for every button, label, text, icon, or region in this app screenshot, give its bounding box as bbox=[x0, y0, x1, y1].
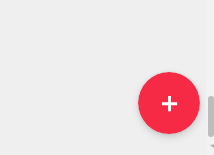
button[interactable]: Add bbox=[138, 72, 200, 134]
button[interactable]: Scroll position bbox=[208, 96, 214, 137]
